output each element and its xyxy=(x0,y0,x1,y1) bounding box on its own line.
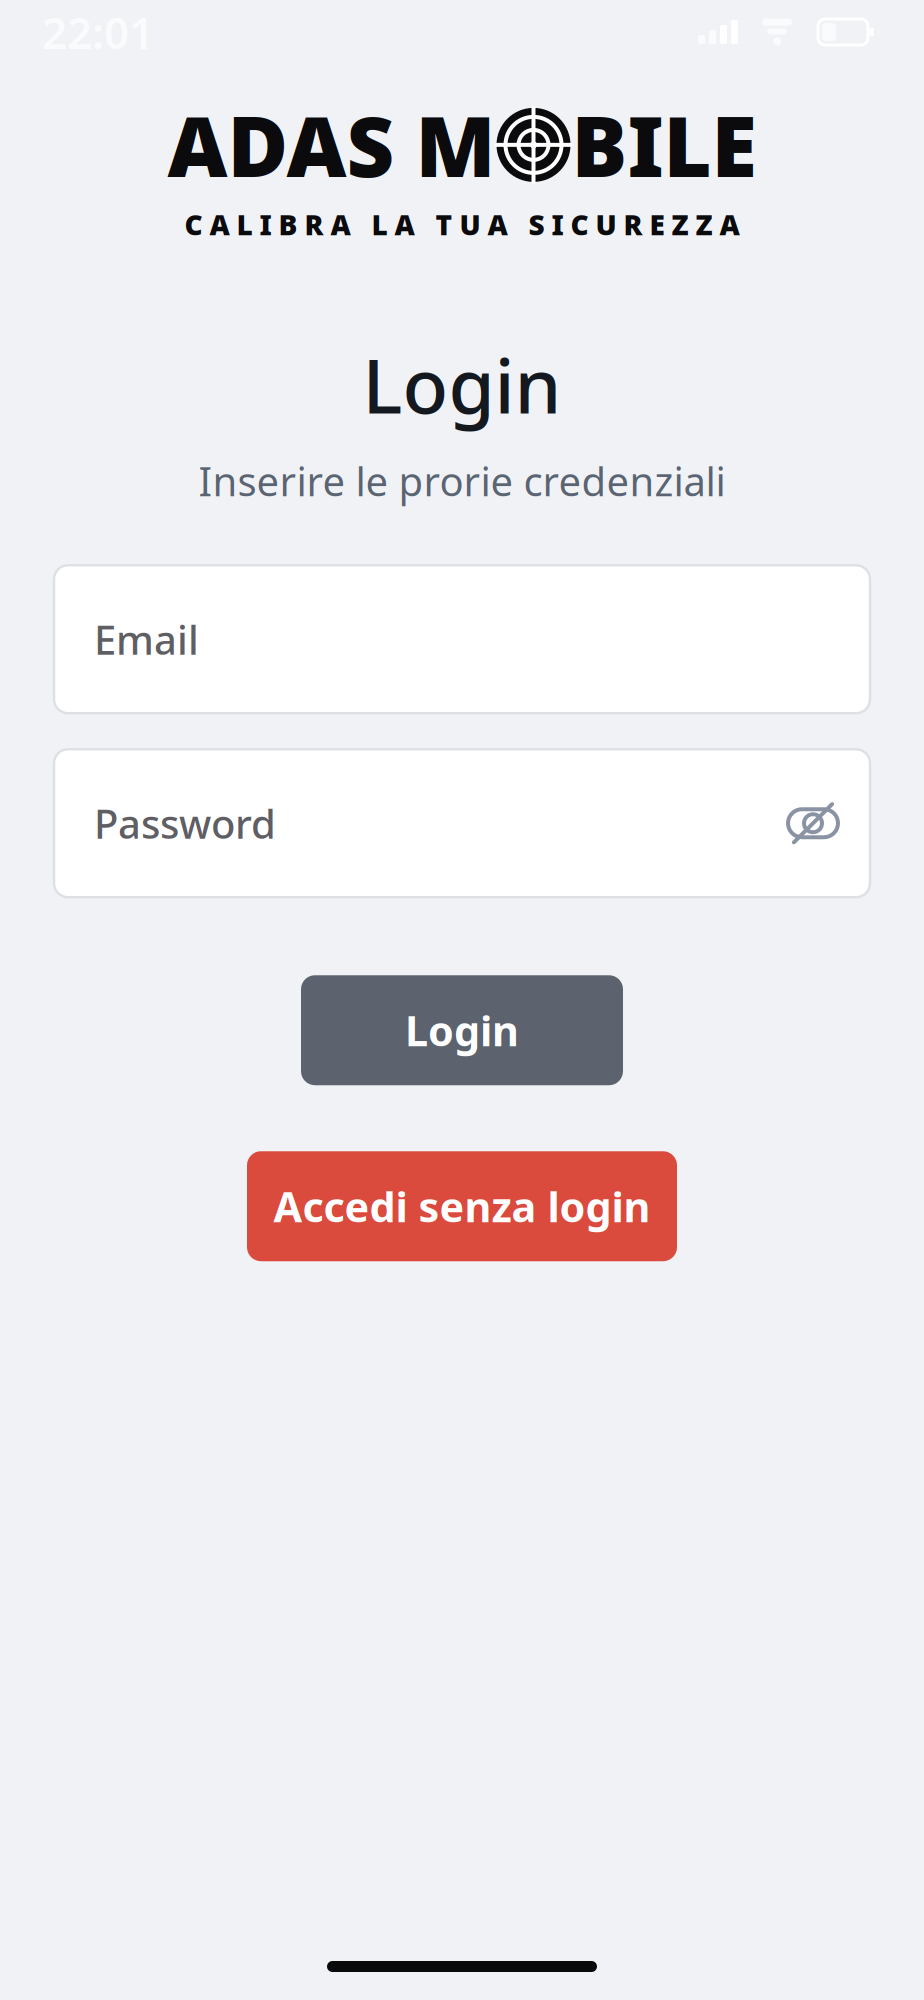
button[interactable]: Show password xyxy=(782,792,844,854)
staticText: Email xyxy=(94,613,199,666)
button[interactable]: Login xyxy=(301,975,623,1085)
staticText: C A L I B R A L A T U A S I C U R E Z Z … xyxy=(184,206,739,243)
staticText: Password xyxy=(94,797,276,850)
staticText: Inserire le prorie credenziali xyxy=(198,454,725,507)
staticText: 22:01 xyxy=(42,3,154,61)
staticText: BILE xyxy=(571,90,756,200)
staticText: ADAS M xyxy=(167,90,495,200)
button[interactable]: Accedi senza login xyxy=(247,1151,677,1261)
staticText: Login xyxy=(405,1003,519,1058)
staticText: Accedi senza login xyxy=(273,1179,650,1234)
staticText: Login xyxy=(362,335,561,434)
